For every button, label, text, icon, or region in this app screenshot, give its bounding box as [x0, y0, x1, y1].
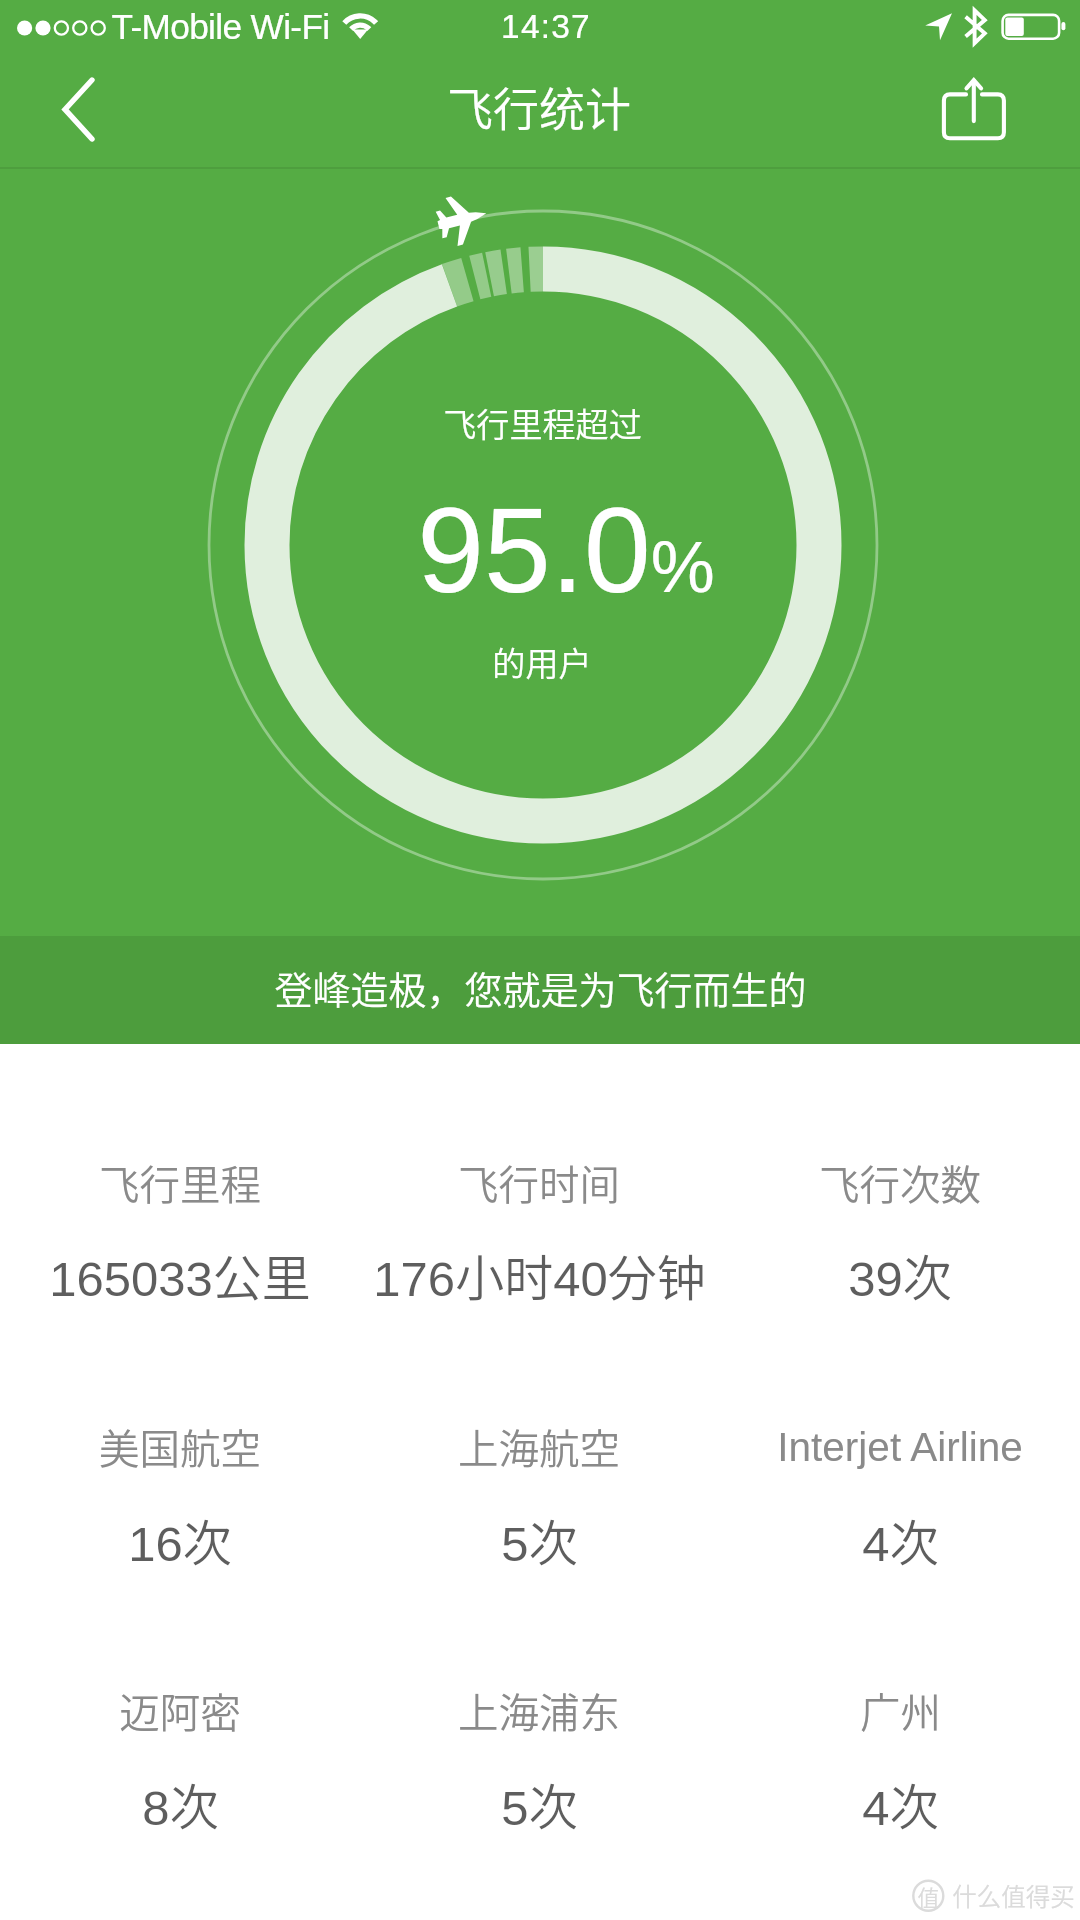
staticText: 广州 [860, 1681, 941, 1740]
staticText: 5次 [501, 1504, 578, 1575]
staticText: 上海浦东 [458, 1681, 620, 1740]
staticText: Interjet Airline [777, 1424, 1023, 1469]
staticText: 值 [917, 1880, 940, 1912]
staticText: 的用户 [492, 638, 592, 686]
button[interactable]: Back [20, 55, 140, 165]
staticText: 飞行里程 [99, 1153, 261, 1212]
staticText: 迈阿密 [119, 1681, 241, 1740]
staticText: 176小时40分钟 [373, 1239, 706, 1310]
staticText: 8次 [142, 1768, 219, 1839]
staticText: 飞行时间 [458, 1153, 620, 1212]
button[interactable]: Share [930, 62, 1040, 162]
staticText: 16次 [128, 1504, 232, 1575]
staticText: 5次 [501, 1768, 578, 1839]
staticText: 95.0% [417, 483, 715, 617]
staticText: 飞行里程超过 [443, 399, 642, 447]
staticText: 39次 [848, 1239, 952, 1310]
staticText: 飞行次数 [819, 1153, 981, 1212]
staticText: 4次 [862, 1768, 939, 1839]
staticText: 4次 [862, 1504, 939, 1575]
staticText: 165033公里 [49, 1239, 311, 1310]
staticText: 飞行统计 [447, 73, 631, 140]
staticText: 什么值得买 [952, 1878, 1075, 1913]
staticText: 14:37 [501, 8, 591, 45]
staticText: 登峰造极，您就是为飞行而生的 [274, 960, 807, 1015]
staticText: T-Mobile Wi-Fi [111, 7, 330, 46]
staticText: 美国航空 [99, 1417, 261, 1476]
staticText: 上海航空 [458, 1417, 620, 1476]
